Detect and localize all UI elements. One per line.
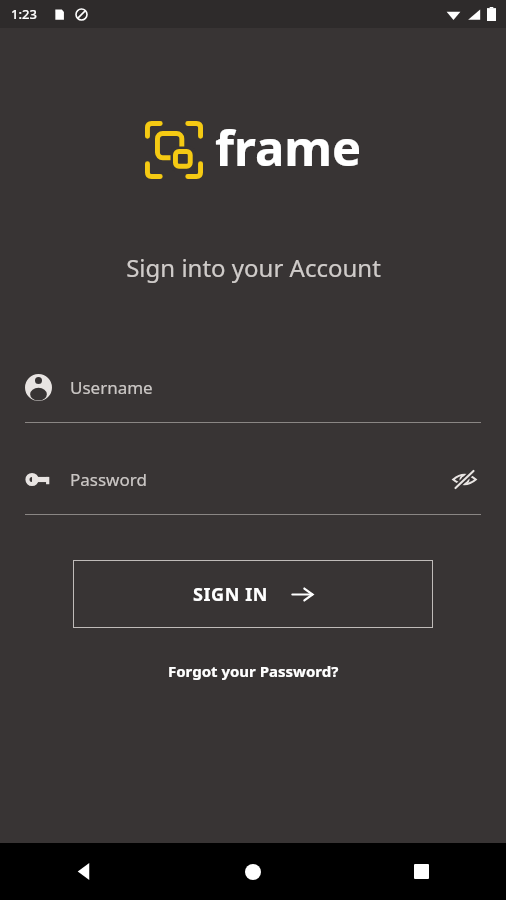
button[interactable]: Recent apps — [337, 843, 506, 900]
staticText: Username — [70, 376, 481, 399]
button[interactable]: Password — [25, 453, 481, 515]
button[interactable]: SIGN IN — [73, 560, 433, 628]
staticText: Forgot your Password? — [168, 661, 339, 681]
staticText: SIGN IN — [193, 582, 269, 607]
button[interactable]: Back — [0, 843, 168, 900]
staticText: frame — [215, 114, 362, 181]
staticText: Sign into your Account — [126, 251, 381, 284]
button[interactable]: Username — [25, 361, 481, 423]
staticText: Password — [70, 468, 447, 491]
button[interactable]: Home — [168, 843, 337, 900]
button[interactable]: Forgot your Password? — [160, 657, 347, 685]
button[interactable]: Show password — [447, 462, 481, 496]
staticText: 1:23 — [11, 5, 37, 23]
